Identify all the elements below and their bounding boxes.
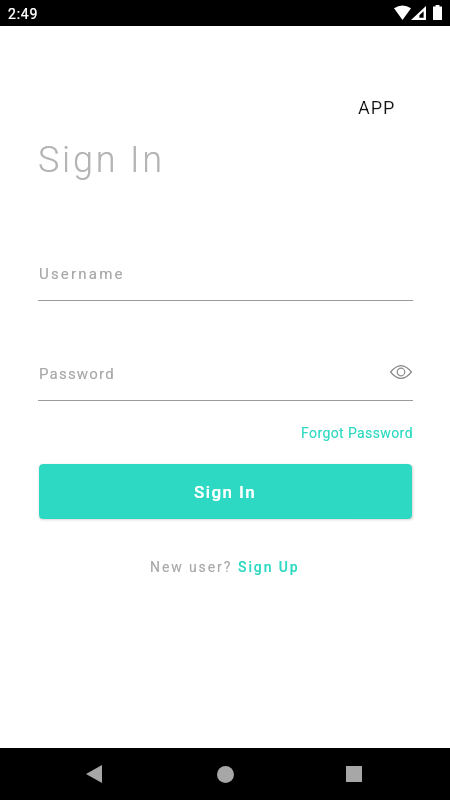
button[interactable]: Recent apps [329,757,379,791]
staticText: 2:49 [8,6,39,22]
staticText: Sign In [194,482,257,502]
staticText: Forgot Password [301,425,413,441]
button[interactable]: Password [38,349,413,401]
staticText: Sign In [38,139,165,181]
staticText: New user? [150,559,238,575]
staticText: Password [39,365,115,383]
button[interactable]: Sign In [39,464,412,519]
staticText: Username [39,265,125,283]
button[interactable]: Show password [387,358,415,386]
staticText: Sign Up [238,559,300,575]
button[interactable]: APP [356,97,396,117]
staticText: APP [358,97,396,117]
button[interactable]: Forgot Password [298,421,416,445]
button[interactable]: Home [200,757,250,791]
button[interactable]: Back [69,757,119,791]
button[interactable]: Sign Up [238,559,300,575]
button[interactable]: Username [38,249,413,301]
